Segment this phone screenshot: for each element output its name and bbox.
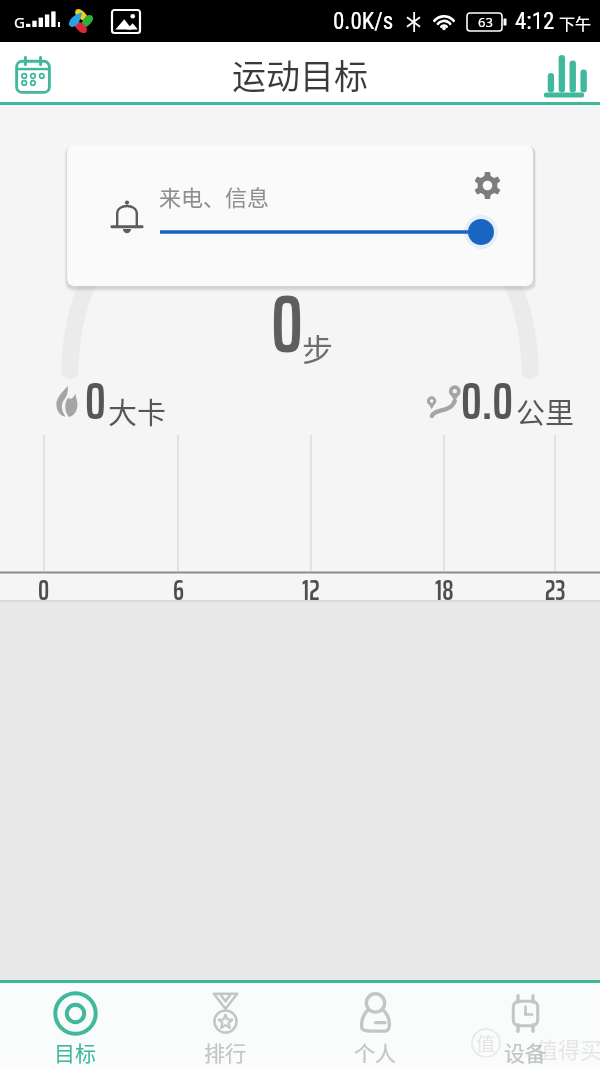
button[interactable]: Settings	[468, 166, 508, 206]
staticText: 0.0K/s	[333, 8, 394, 35]
staticText: 4:12	[515, 8, 555, 35]
button[interactable]: 目标	[0, 983, 150, 1067]
staticText: 18	[435, 568, 454, 612]
button[interactable]: 设备	[450, 983, 600, 1067]
staticText: 0.0	[461, 360, 514, 442]
button[interactable]: 排行	[150, 983, 300, 1067]
button[interactable]: 个人	[300, 983, 450, 1067]
staticText: 运动目标	[232, 50, 368, 99]
staticText: 目标	[54, 1037, 96, 1067]
staticText: 下午	[559, 11, 592, 34]
staticText: 12	[302, 568, 320, 612]
staticText: 公里	[516, 390, 575, 432]
staticText: 个人	[354, 1037, 396, 1067]
staticText: 值	[476, 1029, 496, 1057]
button[interactable]: Statistics	[536, 46, 592, 102]
staticText: 6	[173, 568, 184, 612]
staticText: 来电、信息	[159, 180, 270, 212]
staticText: 步	[302, 325, 333, 370]
staticText: 63	[478, 13, 493, 31]
button[interactable]: Calendar	[5, 46, 61, 102]
staticText: 0	[38, 568, 50, 612]
staticText: 大卡	[108, 390, 167, 432]
staticText: 值得买	[536, 1032, 600, 1064]
staticText: 0	[85, 360, 106, 442]
staticText: 0	[271, 261, 303, 387]
staticText: 设备	[504, 1037, 546, 1067]
staticText: 23	[545, 568, 566, 612]
staticText: 排行	[204, 1037, 246, 1067]
staticText: G	[14, 12, 25, 32]
